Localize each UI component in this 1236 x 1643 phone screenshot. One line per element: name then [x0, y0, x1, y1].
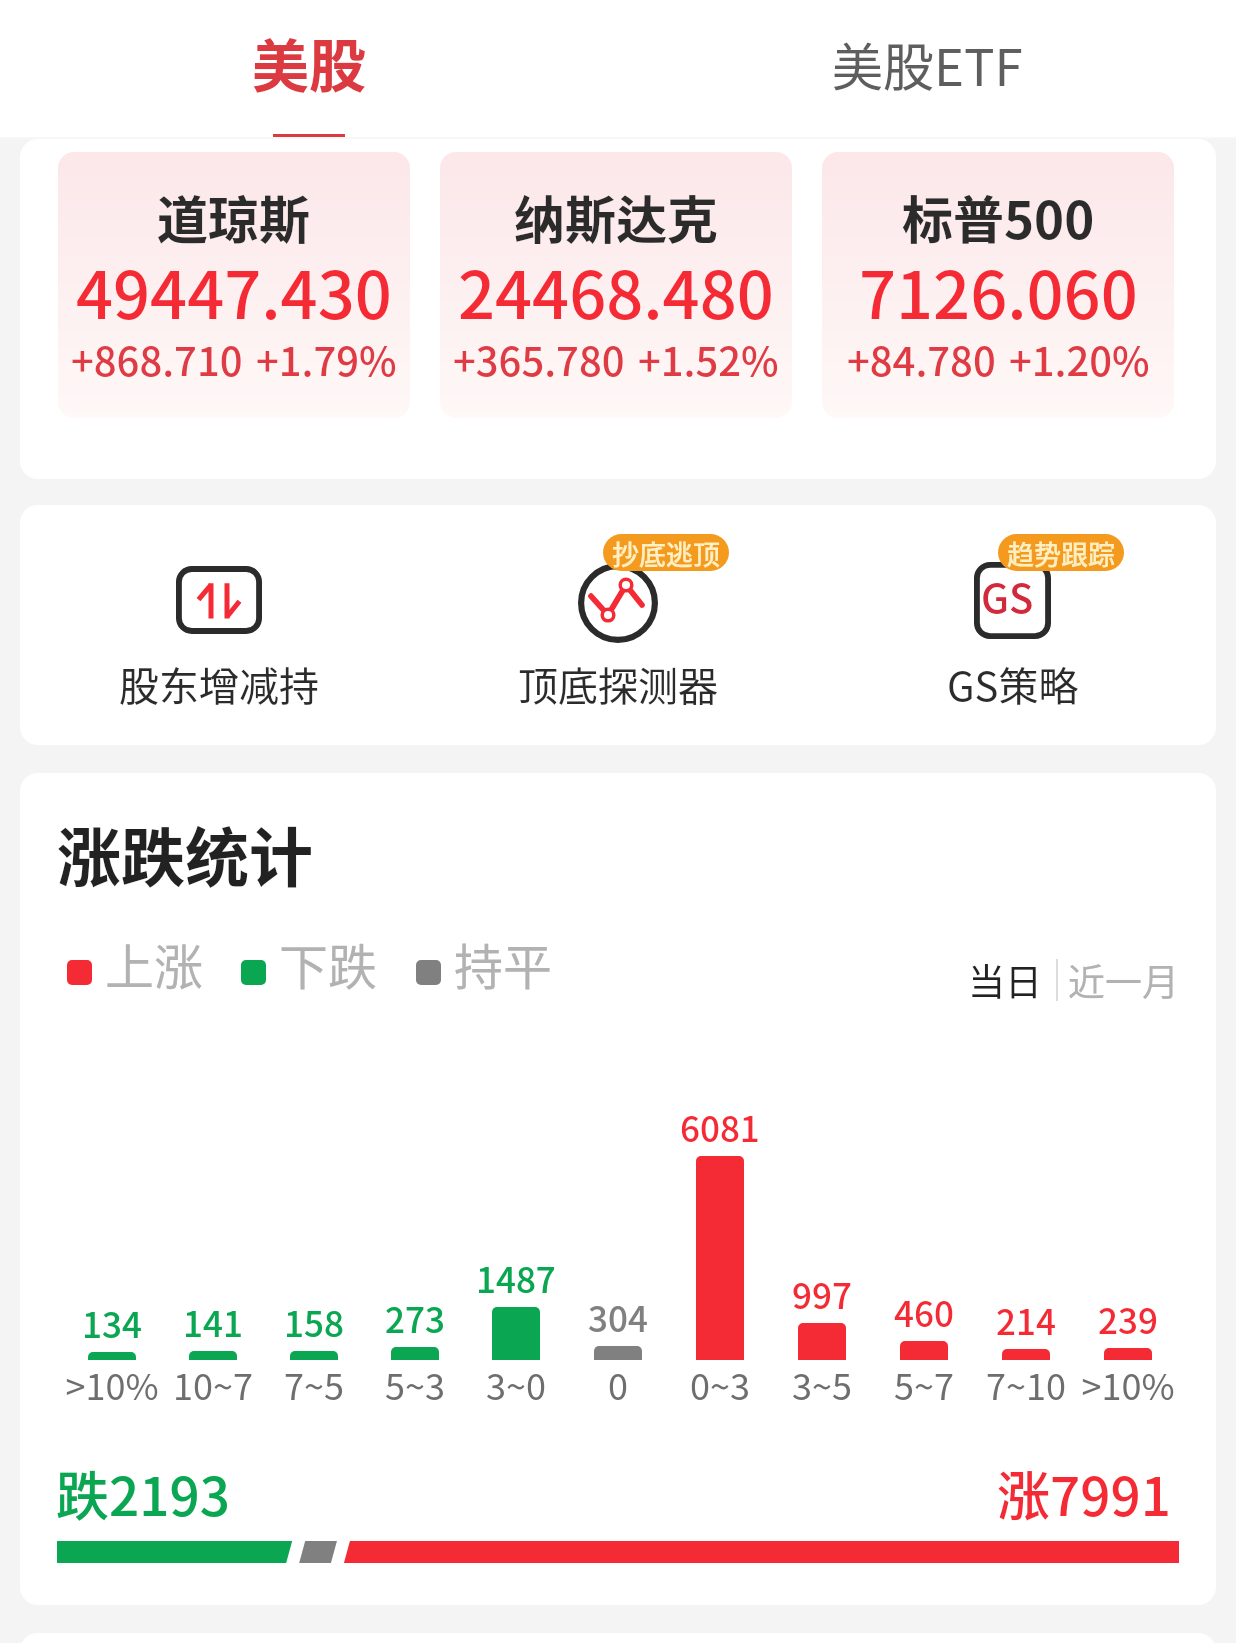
staticText: 道琼斯 [157, 180, 311, 254]
staticText: GS [981, 567, 1034, 625]
button[interactable]: 纳斯达克 [440, 152, 792, 418]
staticText: 3~0 [486, 1358, 546, 1410]
staticText: 997 [792, 1268, 852, 1319]
staticText: +84.780 [847, 330, 996, 388]
staticText: 美股 [252, 21, 366, 104]
staticText: 5~3 [385, 1358, 445, 1410]
staticText: +1.20% [1009, 330, 1150, 388]
staticText: 纳斯达克 [514, 180, 719, 254]
other: GS策略 [974, 562, 1051, 639]
staticText: 涨7991 [997, 1455, 1171, 1532]
staticText: 股东增减持 [119, 655, 319, 713]
staticText: 7~10 [986, 1358, 1066, 1410]
staticText: +1.79% [256, 330, 397, 388]
staticText: 1487 [476, 1252, 556, 1303]
staticText: GS策略 [947, 655, 1079, 713]
staticText: 上涨 [105, 928, 204, 999]
button[interactable]: 近一月 [1068, 953, 1179, 1007]
other: 股东增减持 [176, 557, 262, 643]
staticText: 0~3 [690, 1358, 750, 1410]
staticText: 239 [1098, 1293, 1158, 1344]
button[interactable]: 标普500 [822, 152, 1174, 418]
staticText: >10% [65, 1358, 159, 1410]
staticText: 抄底逃顶 [612, 534, 720, 571]
staticText: 24468.480 [458, 244, 774, 338]
staticText: 3~5 [792, 1358, 852, 1410]
button[interactable]: 股东增减持 [20, 505, 418, 745]
staticText: 跌2193 [56, 1455, 230, 1532]
button[interactable]: 美股ETF [618, 0, 1236, 139]
other: 顶底探测器 [575, 560, 661, 646]
staticText: 近一月 [1068, 953, 1179, 1007]
staticText: 460 [894, 1286, 954, 1337]
staticText: 214 [996, 1294, 1056, 1345]
button[interactable]: 道琼斯 [58, 152, 410, 418]
staticText: 6081 [680, 1101, 760, 1152]
staticText: >10% [1081, 1358, 1175, 1410]
staticText: 141 [183, 1296, 243, 1347]
button[interactable]: 当日 [968, 953, 1042, 1007]
staticText: 涨跌统计 [57, 807, 313, 900]
staticText: 10~7 [173, 1358, 253, 1410]
staticText: +1.52% [638, 330, 779, 388]
staticText: 下跌 [279, 928, 378, 999]
staticText: 当日 [968, 953, 1042, 1007]
staticText: 158 [284, 1296, 344, 1347]
staticText: 顶底探测器 [518, 655, 718, 713]
button[interactable]: 美股 [0, 0, 618, 139]
staticText: +868.710 [71, 330, 243, 388]
staticText: +365.780 [453, 330, 625, 388]
staticText: 5~7 [894, 1358, 954, 1410]
staticText: 304 [588, 1291, 648, 1342]
staticText: 273 [385, 1292, 445, 1343]
staticText: 趋势跟踪 [1007, 534, 1115, 571]
staticText: 7126.060 [859, 244, 1138, 338]
button[interactable]: 顶底探测器 [418, 505, 817, 745]
staticText: 134 [82, 1297, 142, 1348]
staticText: 标普500 [902, 180, 1095, 254]
staticText: 49447.430 [76, 244, 392, 338]
staticText: 7~5 [284, 1358, 344, 1410]
staticText: 0 [608, 1358, 628, 1410]
staticText: 美股ETF [832, 27, 1023, 101]
staticText: 持平 [454, 928, 553, 999]
button[interactable]: GS策略 [813, 505, 1212, 745]
